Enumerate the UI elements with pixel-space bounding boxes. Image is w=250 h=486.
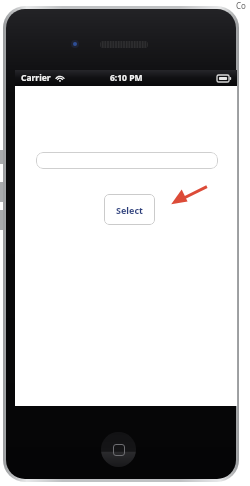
staticText: Co (236, 0, 246, 11)
staticText: 6:10 PM (110, 72, 143, 84)
button[interactable] (36, 152, 218, 169)
staticText: Select (116, 204, 143, 216)
staticText: Carrier (21, 72, 51, 84)
button[interactable]: Home (101, 432, 136, 467)
button[interactable]: Select (104, 194, 155, 225)
